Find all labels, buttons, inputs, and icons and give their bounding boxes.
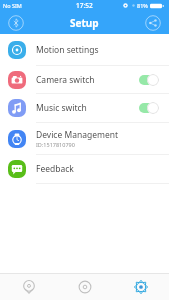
button[interactable]: Settings (113, 274, 169, 300)
button[interactable]: Camera switch (0, 66, 169, 94)
staticText: Camera switch (36, 74, 95, 86)
staticText: Device Management (36, 129, 119, 141)
staticText: No SIM (3, 2, 22, 9)
button[interactable]: Feedback (0, 155, 169, 184)
button[interactable] (139, 102, 159, 114)
staticText: Feedback (36, 163, 74, 175)
staticText: Music switch (36, 102, 87, 114)
button[interactable]: Location (0, 274, 57, 300)
button[interactable]: Bluetooth (8, 15, 24, 31)
staticText: 81% (137, 2, 148, 9)
button[interactable] (139, 74, 159, 86)
button[interactable]: Share (145, 15, 161, 31)
staticText: ID:1517810790 (36, 141, 75, 148)
button[interactable]: Motion settings (0, 34, 169, 66)
staticText: 17:52 (76, 1, 93, 10)
button[interactable]: Music switch (0, 94, 169, 123)
staticText: Setup (70, 16, 99, 30)
staticText: Motion settings (36, 44, 99, 56)
button[interactable]: Device Management (0, 123, 169, 155)
button[interactable]: Device (57, 274, 113, 300)
